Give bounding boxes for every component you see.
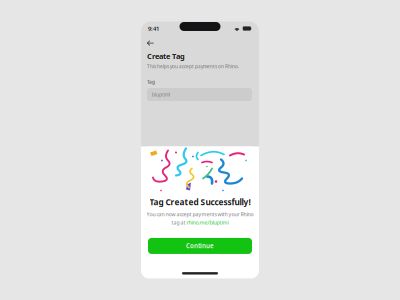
staticText: Tag <box>147 78 155 85</box>
staticText: This helps you accept payments on Rhino. <box>147 63 239 70</box>
staticText: 9:41 <box>148 24 159 32</box>
button[interactable]: Continue <box>148 238 252 254</box>
staticText: Tag Created Successfully! <box>149 196 250 208</box>
button[interactable]: Back <box>147 38 162 48</box>
staticText: tag at <box>171 219 185 226</box>
staticText: You can now accept payments with your Rh… <box>146 211 253 218</box>
staticText: Create Tag <box>147 51 185 61</box>
staticText: Continue <box>186 242 214 250</box>
staticText: bluptimi <box>152 91 170 98</box>
staticText: rhino.me/bluptimi <box>187 219 229 226</box>
